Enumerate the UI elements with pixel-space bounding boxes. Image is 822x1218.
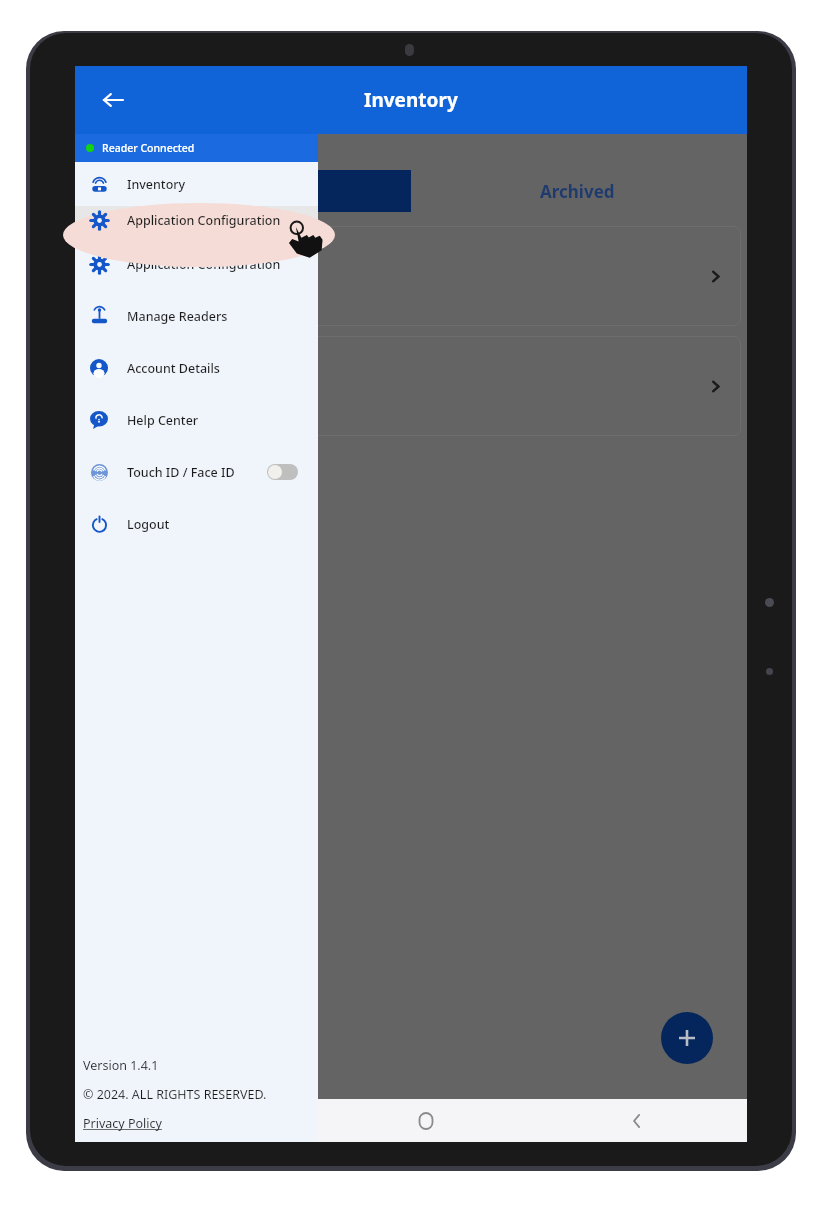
staticText: Archived (540, 180, 615, 203)
button[interactable]: Back (85, 66, 141, 134)
staticText: Application Configuration (127, 212, 281, 229)
staticText: Inventory (364, 87, 458, 113)
staticText: Application Configuration (127, 256, 281, 273)
button[interactable]: Application Configuration (75, 194, 318, 246)
button[interactable] (81, 336, 741, 436)
staticText: Touch ID / Face ID (127, 464, 235, 481)
button[interactable]: Application Configuration (75, 238, 318, 290)
button[interactable]: Logout (75, 498, 318, 550)
button[interactable]: Privacy Policy (83, 1115, 162, 1132)
button[interactable]: Reader Connected (75, 134, 318, 162)
staticText: Settings (96, 213, 150, 231)
button[interactable]: Help Center (75, 394, 318, 446)
staticText: Privacy Policy (83, 1115, 162, 1132)
staticText: Help Center (127, 412, 199, 429)
button[interactable]: Home (406, 1101, 446, 1141)
staticText: Inventory (127, 176, 186, 193)
button[interactable]: Account Details (75, 342, 318, 394)
staticText: Account Details (127, 360, 220, 377)
button[interactable]: Back (617, 1101, 657, 1141)
staticText: Reader Connected (102, 141, 195, 155)
button[interactable]: Add item (661, 1012, 713, 1064)
staticText: © 2024. ALL RIGHTS RESERVED. (83, 1086, 267, 1103)
staticText: Version 1.4.1 (83, 1057, 159, 1074)
staticText: Logout (127, 516, 170, 533)
button[interactable]: Inventory (75, 162, 318, 206)
button[interactable]: Touch ID / Face ID (75, 446, 318, 498)
button[interactable] (81, 226, 741, 326)
button[interactable]: Manage Readers (75, 290, 318, 342)
staticText: Manage Readers (127, 308, 228, 325)
